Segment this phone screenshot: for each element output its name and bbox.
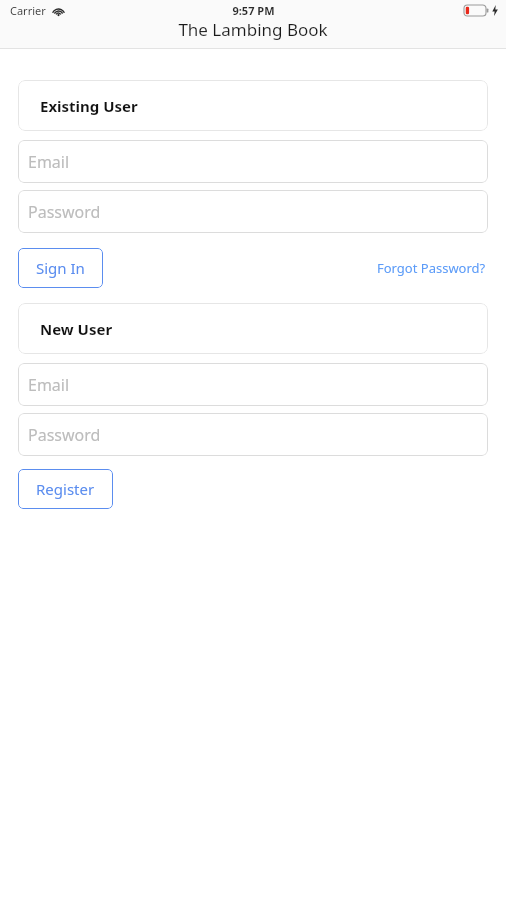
staticText: The Lambing Book — [178, 18, 328, 41]
other: Charging — [492, 5, 498, 16]
staticText: Email — [28, 151, 70, 173]
staticText: Existing User — [40, 96, 138, 116]
other: Wi-Fi signal — [52, 6, 65, 16]
other: Battery low, charging — [464, 5, 489, 16]
staticText: 9:57 PM — [232, 3, 275, 18]
staticText: Carrier — [10, 3, 46, 18]
button[interactable]: Password — [18, 413, 488, 456]
button[interactable]: Email — [18, 140, 488, 183]
staticText: Sign In — [36, 258, 85, 278]
button[interactable]: Sign In — [18, 248, 103, 288]
button[interactable]: Password — [18, 190, 488, 233]
staticText: Password — [28, 424, 101, 446]
button[interactable]: New User — [18, 303, 488, 354]
staticText: Email — [28, 374, 70, 396]
staticText: New User — [40, 319, 113, 339]
button[interactable]: Forgot Password? — [375, 253, 488, 283]
button[interactable]: Register — [18, 469, 113, 509]
staticText: Password — [28, 201, 101, 223]
button[interactable]: Email — [18, 363, 488, 406]
button[interactable]: Existing User — [18, 80, 488, 131]
staticText: Register — [36, 479, 95, 499]
staticText: Forgot Password? — [377, 259, 486, 277]
